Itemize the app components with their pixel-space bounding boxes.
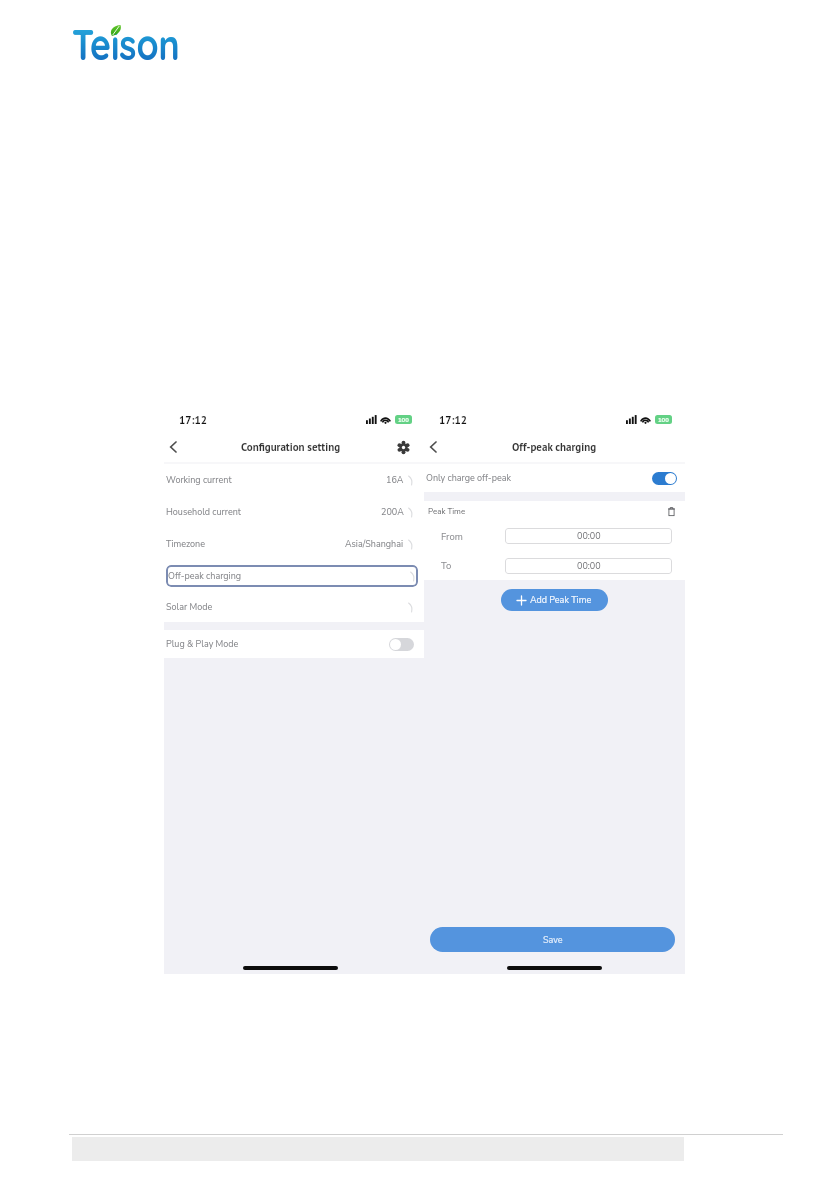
- staticText: Configuration setting: [241, 440, 341, 454]
- staticText: Only charge off-peak: [426, 472, 511, 484]
- staticText: 100: [398, 416, 409, 424]
- staticText: 200A: [381, 506, 404, 518]
- button[interactable]: Back: [424, 432, 441, 462]
- button[interactable]: Settings: [394, 432, 413, 462]
- staticText: Save: [543, 934, 563, 946]
- staticText: Off-peak charging: [168, 570, 242, 582]
- button[interactable]: Delete: [665, 505, 677, 517]
- staticText: Asia/Shanghai: [345, 538, 404, 550]
- staticText: 00:00: [577, 530, 601, 542]
- staticText: Teison: [72, 18, 180, 67]
- staticText: 16A: [386, 474, 404, 486]
- staticText: 17:12: [439, 413, 467, 427]
- staticText: Off-peak charging: [512, 440, 597, 454]
- staticText: 00:00: [577, 560, 601, 572]
- staticText: Working current: [166, 474, 232, 486]
- button[interactable]: Household current: [164, 496, 425, 528]
- button[interactable]: Save: [430, 927, 675, 952]
- button[interactable]: 00:00: [505, 558, 672, 574]
- staticText: To: [441, 559, 452, 572]
- staticText: Household current: [166, 506, 241, 518]
- staticText: From: [441, 530, 463, 543]
- staticText: Add Peak Time: [530, 594, 592, 606]
- button[interactable]: Back: [164, 432, 181, 462]
- staticText: 100: [658, 416, 669, 424]
- button[interactable]: Add Peak Time: [501, 589, 608, 611]
- button[interactable]: Off-peak charging: [166, 565, 418, 587]
- button[interactable]: Only charge off-peak: [424, 464, 685, 492]
- staticText: Peak Time: [428, 506, 466, 517]
- button[interactable]: Plug & Play Mode: [164, 630, 425, 658]
- staticText: Solar Mode: [166, 601, 213, 613]
- button[interactable]: Working current: [164, 464, 425, 496]
- staticText: Plug & Play Mode: [166, 638, 239, 650]
- button[interactable]: Timezone: [164, 528, 425, 560]
- staticText: Timezone: [166, 538, 205, 550]
- button[interactable]: Solar Mode: [164, 592, 425, 622]
- staticText: 17:12: [179, 413, 207, 427]
- button[interactable]: 00:00: [505, 528, 672, 544]
